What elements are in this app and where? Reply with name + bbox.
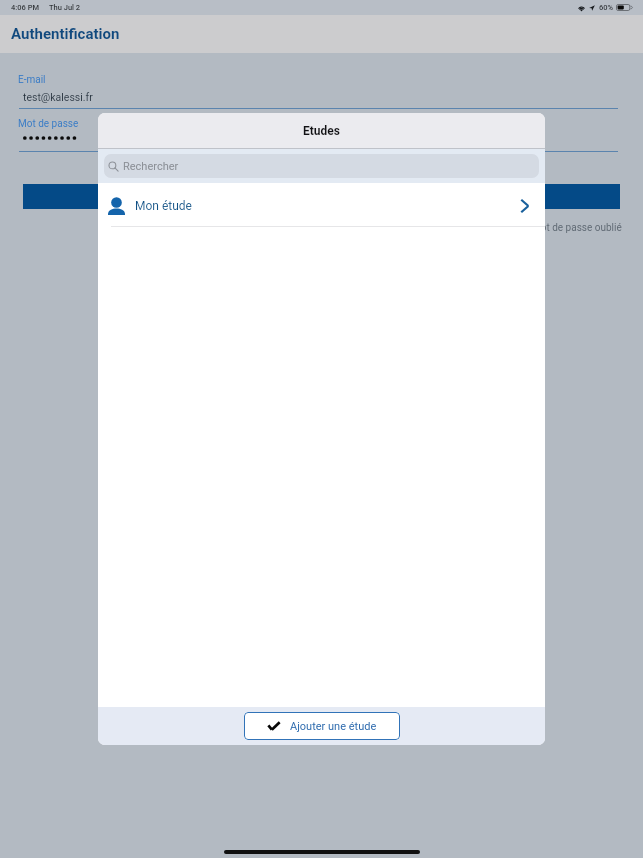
staticText: 4:06 PM (11, 3, 40, 12)
staticText: Rechercher (123, 160, 179, 173)
staticText: 60% (599, 3, 614, 12)
staticText: Etudes (303, 124, 340, 138)
staticText: Thu Jul 2 (49, 3, 81, 12)
staticText: Authentification (11, 25, 120, 43)
other: Ouvrir (520, 199, 529, 213)
staticText: Mot de passe (18, 118, 79, 130)
button[interactable]: Connexion (23, 184, 620, 209)
staticText: Ajouter une étude (290, 720, 377, 733)
button[interactable]: Mon étude (98, 183, 545, 226)
button[interactable]: Rechercher (104, 154, 539, 178)
staticText: E-mail (18, 74, 46, 86)
button[interactable]: Ajouter une étude (244, 712, 400, 740)
button[interactable]: Mot de passe oublié (532, 222, 643, 234)
staticText: test@kalessi.fr (23, 91, 93, 103)
staticText: Mon étude (135, 199, 192, 213)
